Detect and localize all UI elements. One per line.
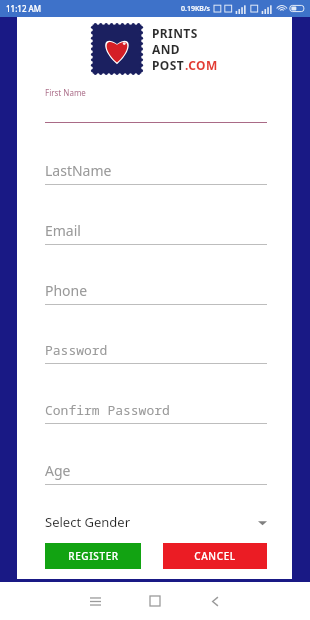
- button[interactable]: Recent apps: [72, 582, 118, 620]
- staticText: PRINTS: [152, 25, 198, 41]
- button[interactable]: First Name: [45, 87, 267, 147]
- staticText: Select Gender: [45, 513, 130, 531]
- staticText: Email: [45, 221, 81, 240]
- staticText: .COM: [185, 57, 218, 73]
- button[interactable]: Back: [192, 582, 238, 620]
- button[interactable]: Email: [45, 207, 267, 267]
- staticText: AND: [152, 41, 181, 57]
- staticText: Age: [45, 461, 71, 480]
- button[interactable]: REGISTER: [45, 543, 141, 569]
- button[interactable]: Age: [45, 447, 267, 507]
- staticText: 0.19KB/s: [181, 4, 211, 14]
- staticText: Phone: [45, 281, 88, 300]
- button[interactable]: Phone: [45, 267, 267, 327]
- button[interactable]: Select Gender: [45, 507, 267, 537]
- staticText: Password: [45, 341, 108, 359]
- staticText: 11:12 AM: [6, 3, 42, 14]
- button[interactable]: Confirm Password: [45, 387, 267, 447]
- button[interactable]: Home: [132, 582, 178, 620]
- staticText: POST: [152, 57, 185, 73]
- staticText: First Name: [45, 87, 86, 98]
- button[interactable]: Password: [45, 327, 267, 387]
- staticText: LastName: [45, 161, 112, 180]
- staticText: Confirm Password: [45, 401, 170, 419]
- staticText: REGISTER: [68, 549, 119, 563]
- button[interactable]: CANCEL: [163, 543, 267, 569]
- staticText: CANCEL: [194, 549, 236, 563]
- button[interactable]: LastName: [45, 147, 267, 207]
